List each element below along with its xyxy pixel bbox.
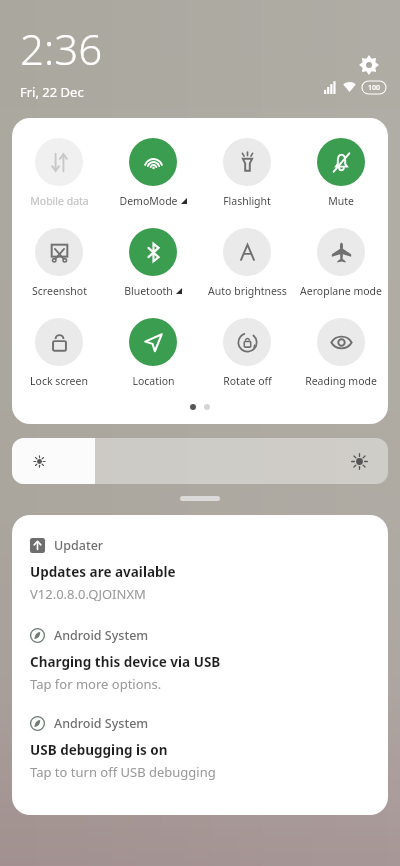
staticText: Updates are available — [30, 563, 176, 581]
staticText: Aeroplane mode — [300, 284, 382, 298]
button[interactable]: Reading mode — [294, 316, 388, 390]
staticText: Rotate off — [223, 374, 272, 388]
staticText: Auto brightness — [208, 284, 287, 298]
staticText: Mute — [328, 194, 354, 208]
staticText: Tap for more options. — [30, 675, 162, 693]
staticText: Mobile data — [30, 194, 89, 208]
button[interactable]: Android System — [30, 627, 370, 693]
button[interactable]: Updater — [30, 537, 370, 603]
staticText: Fri, 22 Dec — [20, 83, 84, 101]
button[interactable]: Location — [106, 316, 200, 390]
button[interactable]: Bluetooth — [106, 226, 200, 300]
staticText: V12.0.8.0.QJOINXM — [30, 585, 146, 603]
staticText: Updater — [54, 537, 104, 554]
staticText: USB debugging is on — [30, 741, 168, 759]
button[interactable]: DemoMode — [106, 136, 200, 210]
button[interactable]: Lock screen — [12, 316, 106, 390]
button[interactable]: Mobile data — [12, 136, 106, 210]
staticText: Charging this device via USB — [30, 653, 221, 671]
staticText: Tap to turn off USB debugging — [30, 763, 216, 781]
button[interactable]: Aeroplane mode — [294, 226, 388, 300]
button[interactable]: Auto brightness — [200, 226, 294, 300]
staticText: Android System — [54, 627, 149, 644]
button[interactable]: Rotate off — [200, 316, 294, 390]
staticText: Bluetooth — [124, 284, 173, 298]
button[interactable]: Flashlight — [200, 136, 294, 210]
staticText: Reading mode — [305, 374, 377, 388]
button[interactable]: Brightness — [12, 438, 388, 484]
staticText: Flashlight — [223, 194, 271, 208]
button[interactable]: Android System — [30, 715, 370, 781]
staticText: DemoMode — [119, 194, 178, 208]
button[interactable]: Mute — [294, 136, 388, 210]
button[interactable]: Settings — [352, 48, 386, 82]
staticText: Android System — [54, 715, 149, 732]
button[interactable]: Screenshot — [12, 226, 106, 300]
staticText: 2:36 — [20, 20, 103, 77]
staticText: Lock screen — [30, 374, 88, 388]
staticText: 100 — [368, 83, 381, 93]
staticText: Location — [132, 374, 175, 388]
staticText: Screenshot — [32, 284, 87, 298]
